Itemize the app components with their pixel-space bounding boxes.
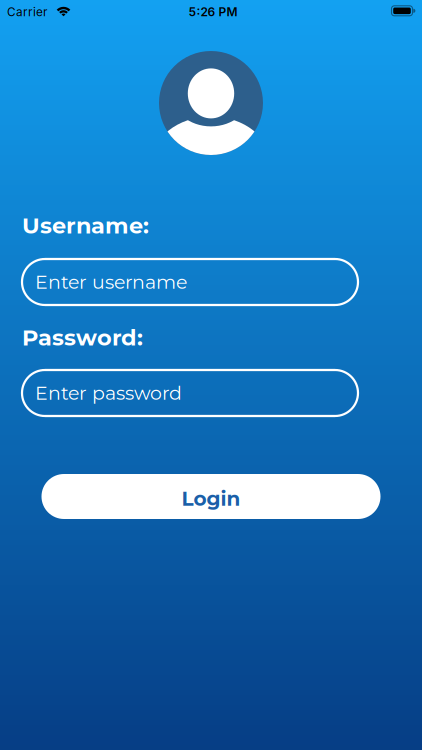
staticText: Enter username <box>35 270 187 294</box>
staticText: Password: <box>22 324 143 351</box>
staticText: Username: <box>22 212 149 239</box>
staticText: 5:26 PM <box>188 5 237 19</box>
staticText: Carrier <box>7 5 47 19</box>
staticText: Enter password <box>35 381 182 405</box>
staticText: Login <box>181 486 240 511</box>
button[interactable]: Enter username <box>22 259 358 305</box>
button[interactable]: Login <box>41 474 380 519</box>
button[interactable]: Enter password <box>22 370 358 416</box>
